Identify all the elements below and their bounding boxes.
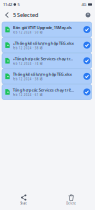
staticText: 4G <box>81 2 86 7</box>
staticText: 11:42 <box>3 2 12 7</box>
button[interactable]: Tổng hợp các Services chạy trên… <box>2 84 92 99</box>
staticText: Tổng hợp các Services chạy trên… <box>13 87 75 92</box>
staticText: +Thống kê số lượng hộp TEG.xlsx <box>13 40 74 46</box>
staticText: 5 <box>18 2 20 7</box>
button[interactable]: Delete <box>47 194 95 205</box>
staticText: Feb 12 2024 · 38 kB <box>13 46 43 50</box>
staticText: Feb 12 2024 · 74 kB <box>13 62 43 65</box>
staticText: Feb 12 2024 · 38 kB <box>13 77 43 81</box>
staticText: Share <box>20 202 27 205</box>
button[interactable]: Back <box>1 9 13 21</box>
staticText: 5 Selected <box>13 11 38 19</box>
staticText: Thống kê số lượng hộp TEG.xlsx <box>13 72 72 77</box>
staticText: Feb 12 2024 · 61 kB <box>13 93 43 97</box>
button[interactable]: +Tổng hợp các Services chạy tr… <box>2 53 92 68</box>
button[interactable]: +Thống kê số lượng hộp TEG.xlsx <box>2 38 92 53</box>
button[interactable]: Share <box>0 194 47 205</box>
staticText: Bản giá VTVT Upgrade_15May.xls <box>13 25 72 30</box>
button[interactable]: Thống kê số lượng hộp TEG.xlsx <box>2 69 92 84</box>
staticText: +Tổng hợp các Services chạy tr… <box>13 56 73 61</box>
staticText: Delete <box>66 202 76 205</box>
button[interactable]: Account <box>82 9 94 21</box>
button[interactable]: Bản giá VTVT Upgrade_15May.xls <box>2 22 92 37</box>
staticText: Feb 12 2024 · 50 kB <box>13 31 43 34</box>
